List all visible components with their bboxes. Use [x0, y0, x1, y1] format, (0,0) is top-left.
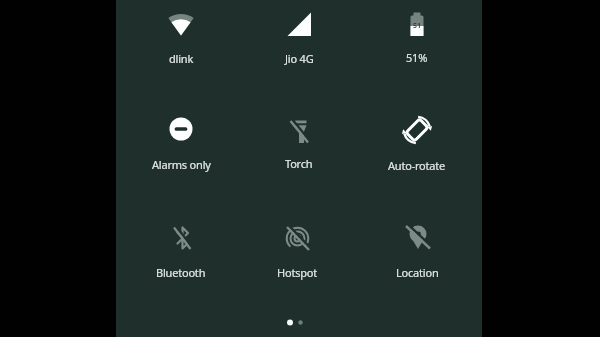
staticText: Alarms only	[152, 157, 211, 172]
button[interactable]: 51	[359, 0, 475, 69]
button[interactable]: Auto-rotate	[359, 104, 475, 177]
staticText: Hotspot	[277, 265, 318, 280]
staticText: Location	[396, 265, 439, 280]
button[interactable]: Torch	[241, 104, 357, 175]
staticText: Bluetooth	[156, 265, 206, 280]
button[interactable]: Hotspot	[239, 211, 355, 284]
button[interactable]: Location	[359, 211, 475, 284]
button[interactable]: dlink	[123, 0, 239, 70]
staticText: Torch	[285, 156, 313, 171]
staticText: Jio 4G	[285, 51, 314, 66]
staticText: 51	[413, 21, 422, 31]
staticText: dlink	[169, 51, 194, 66]
button[interactable]: Jio 4G	[241, 0, 357, 70]
button[interactable]: Alarms only	[123, 103, 239, 176]
staticText: 51%	[406, 50, 428, 65]
button[interactable]: Bluetooth	[123, 211, 239, 284]
staticText: Auto-rotate	[388, 158, 446, 173]
